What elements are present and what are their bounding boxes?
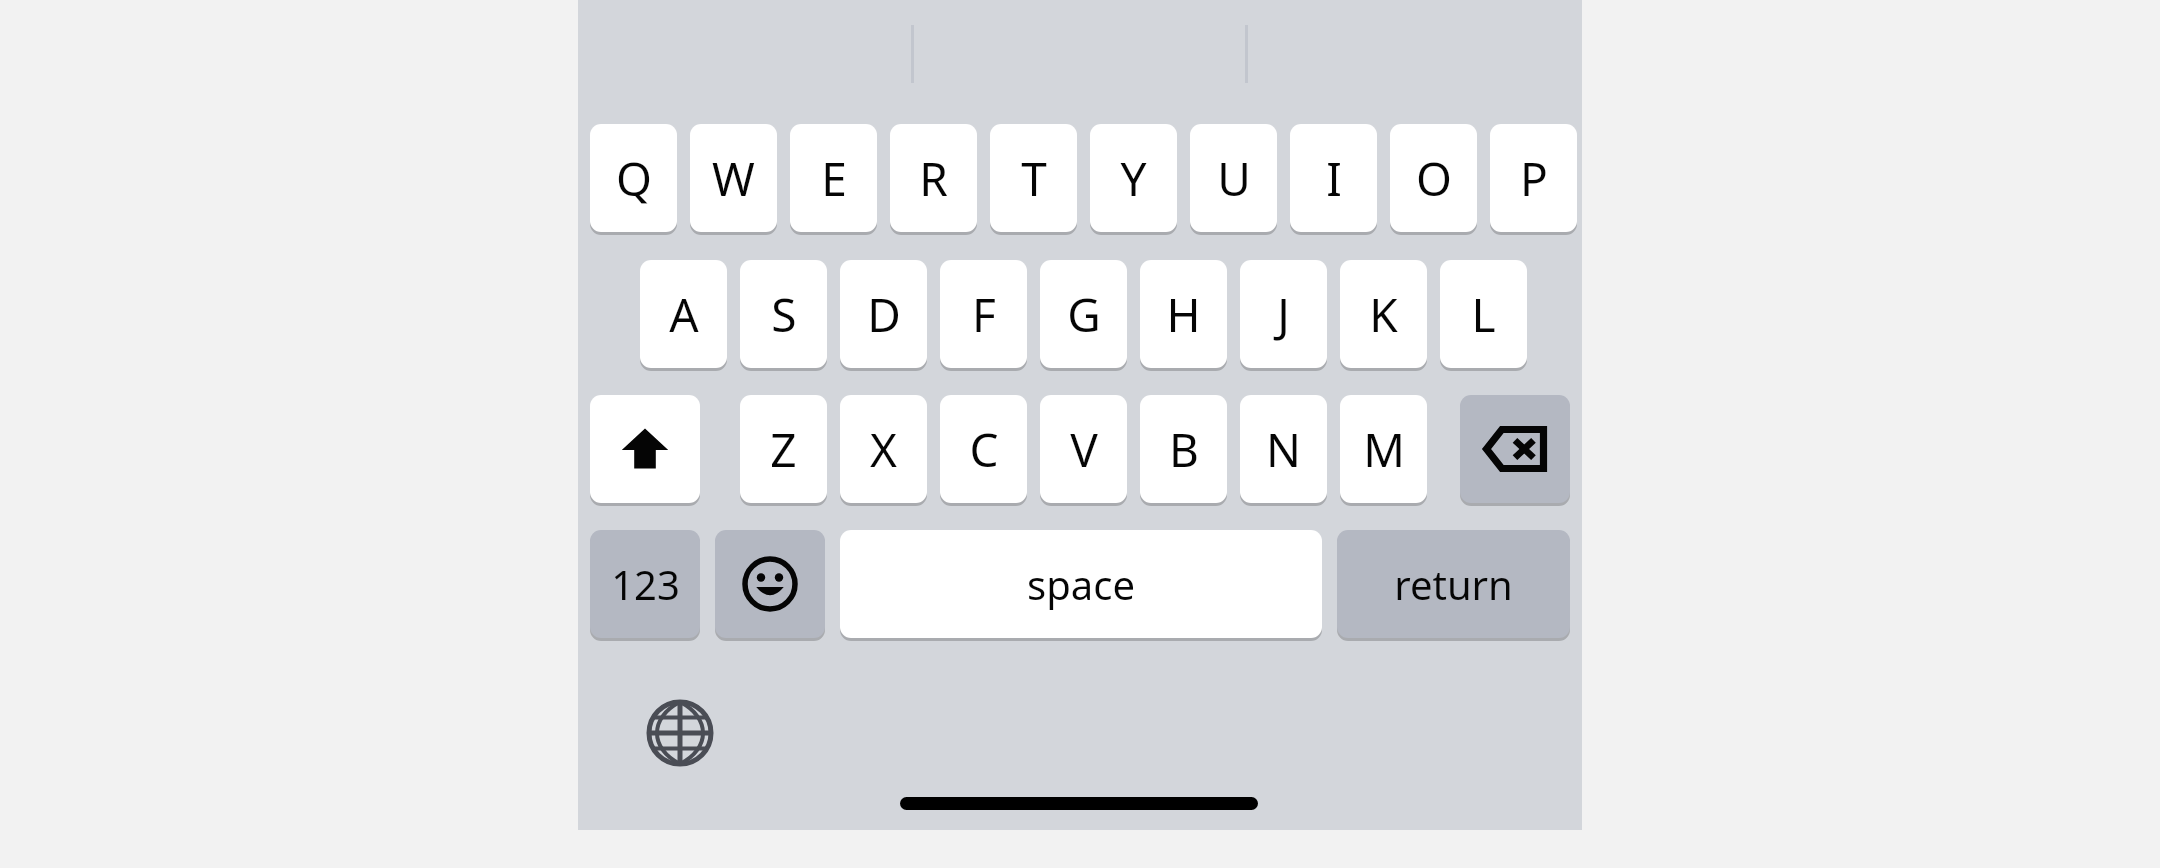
button[interactable]: X [840,395,927,503]
button[interactable]: Q [590,124,677,232]
button[interactable]: Change keyboard language [645,698,715,768]
button[interactable]: Emoji [715,530,825,638]
button[interactable]: R [890,124,977,232]
button[interactable]: G [1040,260,1127,368]
button[interactable]: W [690,124,777,232]
staticText: I [1326,147,1342,210]
staticText: 123 [611,557,680,611]
staticText: U [1217,147,1251,210]
button[interactable]: Z [740,395,827,503]
staticText: G [1067,283,1101,346]
staticText: L [1471,283,1496,346]
staticText: A [669,283,699,346]
staticText: S [771,283,797,346]
staticText: T [1021,147,1047,210]
button[interactable]: N [1240,395,1327,503]
button[interactable]: J [1240,260,1327,368]
button[interactable]: P [1490,124,1577,232]
button[interactable]: S [740,260,827,368]
button[interactable]: O [1390,124,1477,232]
button[interactable]: Delete [1460,395,1570,503]
staticText: return [1394,557,1513,611]
staticText: X [870,418,897,481]
staticText: B [1169,418,1199,481]
button[interactable]: space [840,530,1322,638]
staticText: Q [616,147,652,210]
button[interactable]: D [840,260,927,368]
staticText: M [1363,418,1405,481]
button[interactable]: A [640,260,727,368]
staticText: P [1520,147,1548,210]
button[interactable]: U [1190,124,1277,232]
button[interactable]: return [1337,530,1570,638]
button[interactable]: H [1140,260,1227,368]
button[interactable]: Y [1090,124,1177,232]
button[interactable]: I [1290,124,1377,232]
staticText: Z [770,418,797,481]
button[interactable]: C [940,395,1027,503]
button[interactable]: L [1440,260,1527,368]
staticText: O [1416,147,1452,210]
button[interactable]: T [990,124,1077,232]
button[interactable]: E [790,124,877,232]
staticText: H [1166,283,1201,346]
staticText: Y [1120,147,1147,210]
button[interactable]: K [1340,260,1427,368]
button[interactable]: M [1340,395,1427,503]
staticText: N [1266,418,1301,481]
staticText: D [867,283,901,346]
staticText: E [821,147,847,210]
staticText: R [919,147,948,210]
staticText: C [969,418,999,481]
button[interactable]: Shift [590,395,700,503]
button[interactable]: F [940,260,1027,368]
staticText: space [1027,557,1135,611]
staticText: W [712,147,755,210]
staticText: V [1070,418,1098,481]
button[interactable]: V [1040,395,1127,503]
button[interactable]: B [1140,395,1227,503]
staticText: K [1369,283,1398,346]
button[interactable]: 123 [590,530,700,638]
staticText: F [972,283,996,346]
staticText: J [1277,283,1290,346]
